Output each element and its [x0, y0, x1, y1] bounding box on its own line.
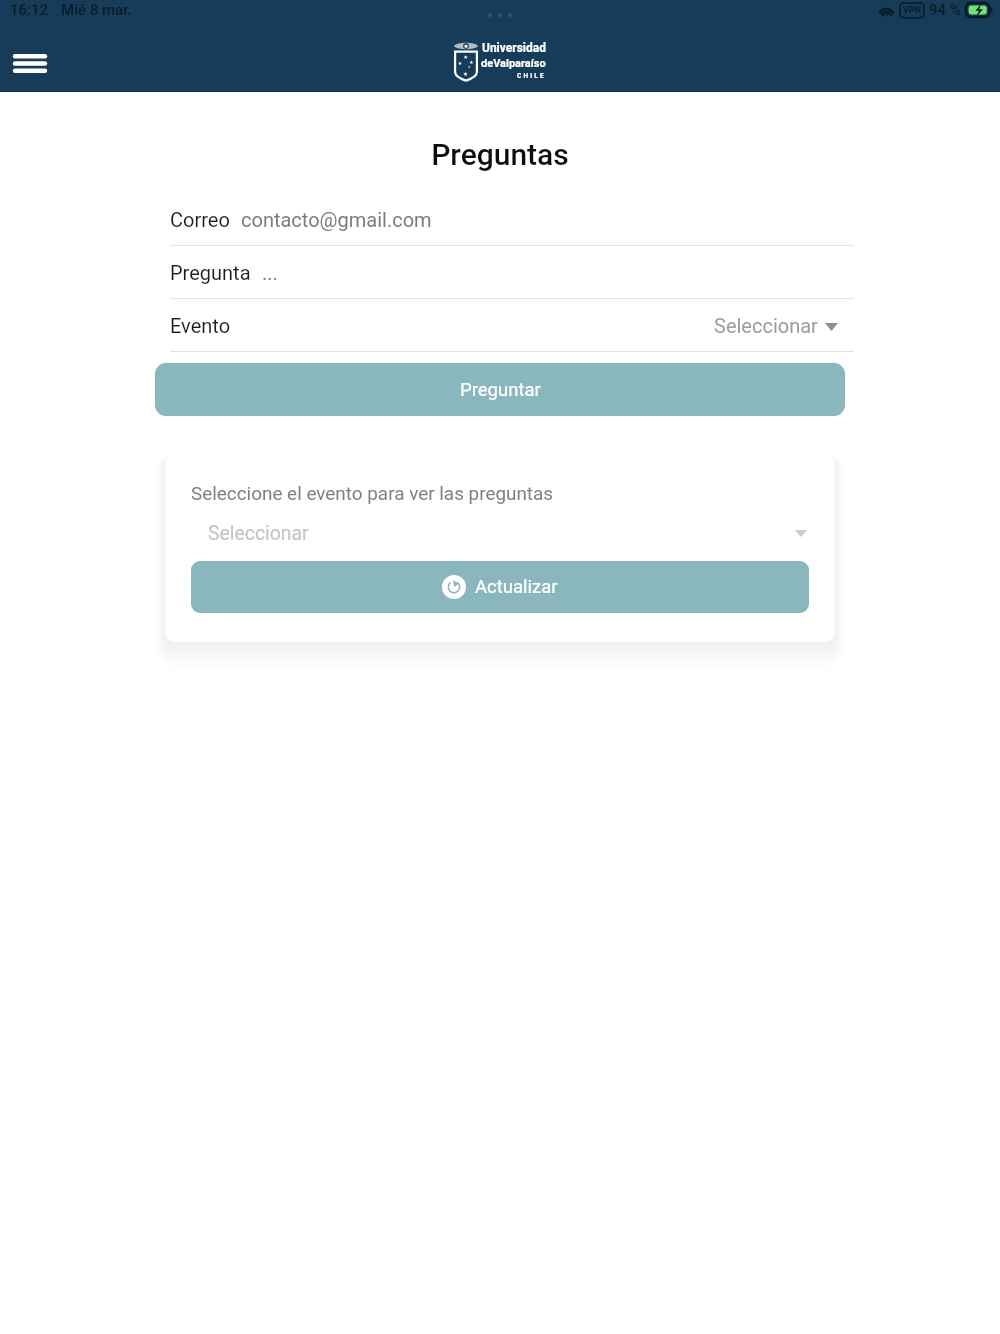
- staticText: Seleccionar: [208, 522, 309, 545]
- staticText: VPN: [903, 5, 922, 16]
- staticText: deValparaíso: [481, 57, 546, 70]
- staticText: Evento: [170, 314, 231, 337]
- button[interactable]: Preguntar: [155, 363, 845, 416]
- staticText: Preguntar: [460, 379, 541, 401]
- staticText: contacto@gmail.com: [241, 208, 432, 231]
- button[interactable]: Seleccionar: [714, 314, 854, 337]
- staticText: Seleccione el evento para ver las pregun…: [191, 482, 554, 504]
- button[interactable]: Seleccionar: [208, 519, 807, 548]
- staticText: Universidad: [482, 41, 546, 55]
- staticText: Correo: [170, 208, 230, 231]
- staticText: Actualizar: [475, 576, 558, 598]
- staticText: Preguntas: [0, 137, 1000, 172]
- staticText: 94 %: [929, 1, 961, 19]
- button[interactable]: Menú: [5, 37, 55, 87]
- staticText: Seleccionar: [714, 314, 818, 337]
- staticText: ...: [262, 261, 278, 284]
- staticText: CHILE: [517, 72, 546, 80]
- staticText: Mié 8 mar.: [61, 1, 132, 19]
- button[interactable]: Actualizar: [191, 561, 809, 613]
- staticText: Pregunta: [170, 261, 251, 284]
- staticText: 16:12: [10, 1, 49, 19]
